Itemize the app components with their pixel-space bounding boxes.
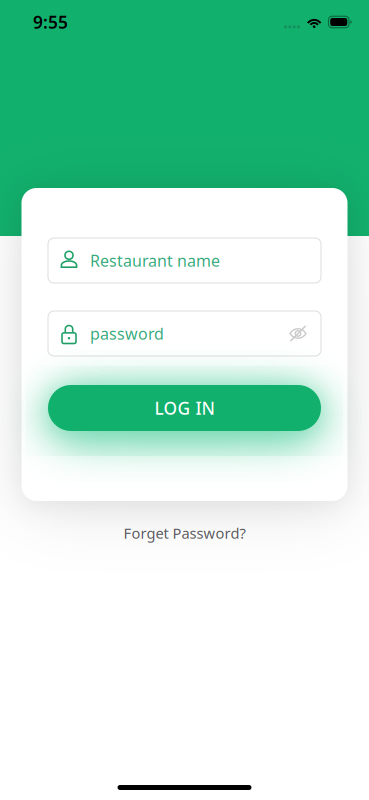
staticText: password (90, 323, 164, 344)
button[interactable]: Restaurant name (48, 238, 321, 283)
staticText: Forget Password? (123, 523, 245, 543)
staticText: 9:55 (33, 10, 68, 33)
button[interactable]: Show password (283, 311, 321, 356)
button[interactable]: LOG IN (48, 385, 321, 431)
button[interactable]: Forget Password? (94, 501, 274, 555)
staticText: Restaurant name (90, 250, 220, 271)
button[interactable]: password (48, 311, 321, 356)
staticText: LOG IN (154, 396, 214, 419)
